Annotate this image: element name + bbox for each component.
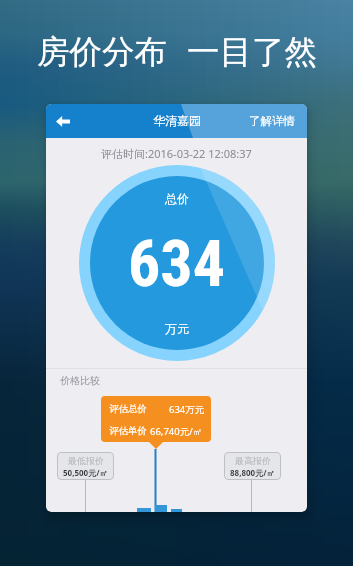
staticText: 房价分布 bbox=[37, 32, 167, 73]
staticText: 评估单价 bbox=[109, 425, 147, 437]
staticText: 了解详情 bbox=[249, 114, 295, 128]
staticText: 50,500元/㎡ bbox=[63, 467, 108, 478]
staticText: 88,800元/㎡ bbox=[230, 467, 275, 478]
staticText: 万元 bbox=[165, 321, 189, 336]
staticText: 最低报价 bbox=[68, 455, 104, 466]
button[interactable]: Back bbox=[49, 107, 77, 135]
staticText: 634万元 bbox=[169, 403, 205, 416]
staticText: 66,740元/㎡ bbox=[150, 425, 203, 438]
staticText: 最高报价 bbox=[235, 455, 271, 466]
staticText: 总价 bbox=[165, 191, 189, 206]
staticText: 一目了然 bbox=[187, 32, 317, 73]
button[interactable]: 了解详情 bbox=[237, 106, 307, 136]
button[interactable]: 最高报价 bbox=[224, 452, 281, 480]
staticText: 华清嘉园 bbox=[153, 113, 201, 128]
button[interactable]: 最低报价 bbox=[57, 452, 114, 480]
staticText: 634 bbox=[128, 227, 226, 302]
staticText: 评估时间:2016-03-22 12:08:37 bbox=[101, 146, 252, 161]
button[interactable]: 评估总价 bbox=[101, 396, 211, 442]
staticText: 价格比较 bbox=[60, 374, 100, 387]
staticText: 评估总价 bbox=[109, 403, 147, 415]
